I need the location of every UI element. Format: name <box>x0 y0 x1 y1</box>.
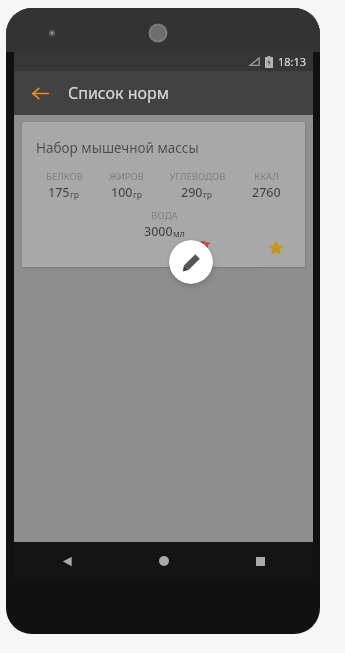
button[interactable]: Набор мышечной массы <box>22 122 305 267</box>
staticText: УГЛЕВОДОВ <box>169 170 226 183</box>
staticText: Набор мышечной массы <box>36 139 199 157</box>
button[interactable]: Home <box>147 544 181 578</box>
staticText: 18:13 <box>278 54 307 69</box>
staticText: ВОДА <box>151 209 178 222</box>
button[interactable]: Favorite <box>263 235 289 261</box>
button[interactable]: Delete <box>190 235 216 261</box>
staticText: Список норм <box>68 82 170 104</box>
staticText: гр <box>203 189 213 201</box>
staticText: 175 <box>48 184 70 201</box>
staticText: гр <box>133 189 143 201</box>
staticText: БЕЛКОВ <box>46 170 83 183</box>
button[interactable]: Recents <box>243 544 277 578</box>
staticText: 2760 <box>252 184 281 201</box>
staticText: ЖИРОВ <box>109 170 144 183</box>
staticText: 3000 <box>144 223 173 240</box>
staticText: 290 <box>181 184 203 201</box>
staticText: гр <box>70 189 80 201</box>
staticText: мл <box>173 228 185 240</box>
staticText: ККАЛ <box>254 170 279 183</box>
button[interactable]: Edit <box>169 240 213 284</box>
button[interactable]: Back <box>50 544 84 578</box>
staticText: 100 <box>111 184 133 201</box>
button[interactable]: Back <box>20 73 60 113</box>
